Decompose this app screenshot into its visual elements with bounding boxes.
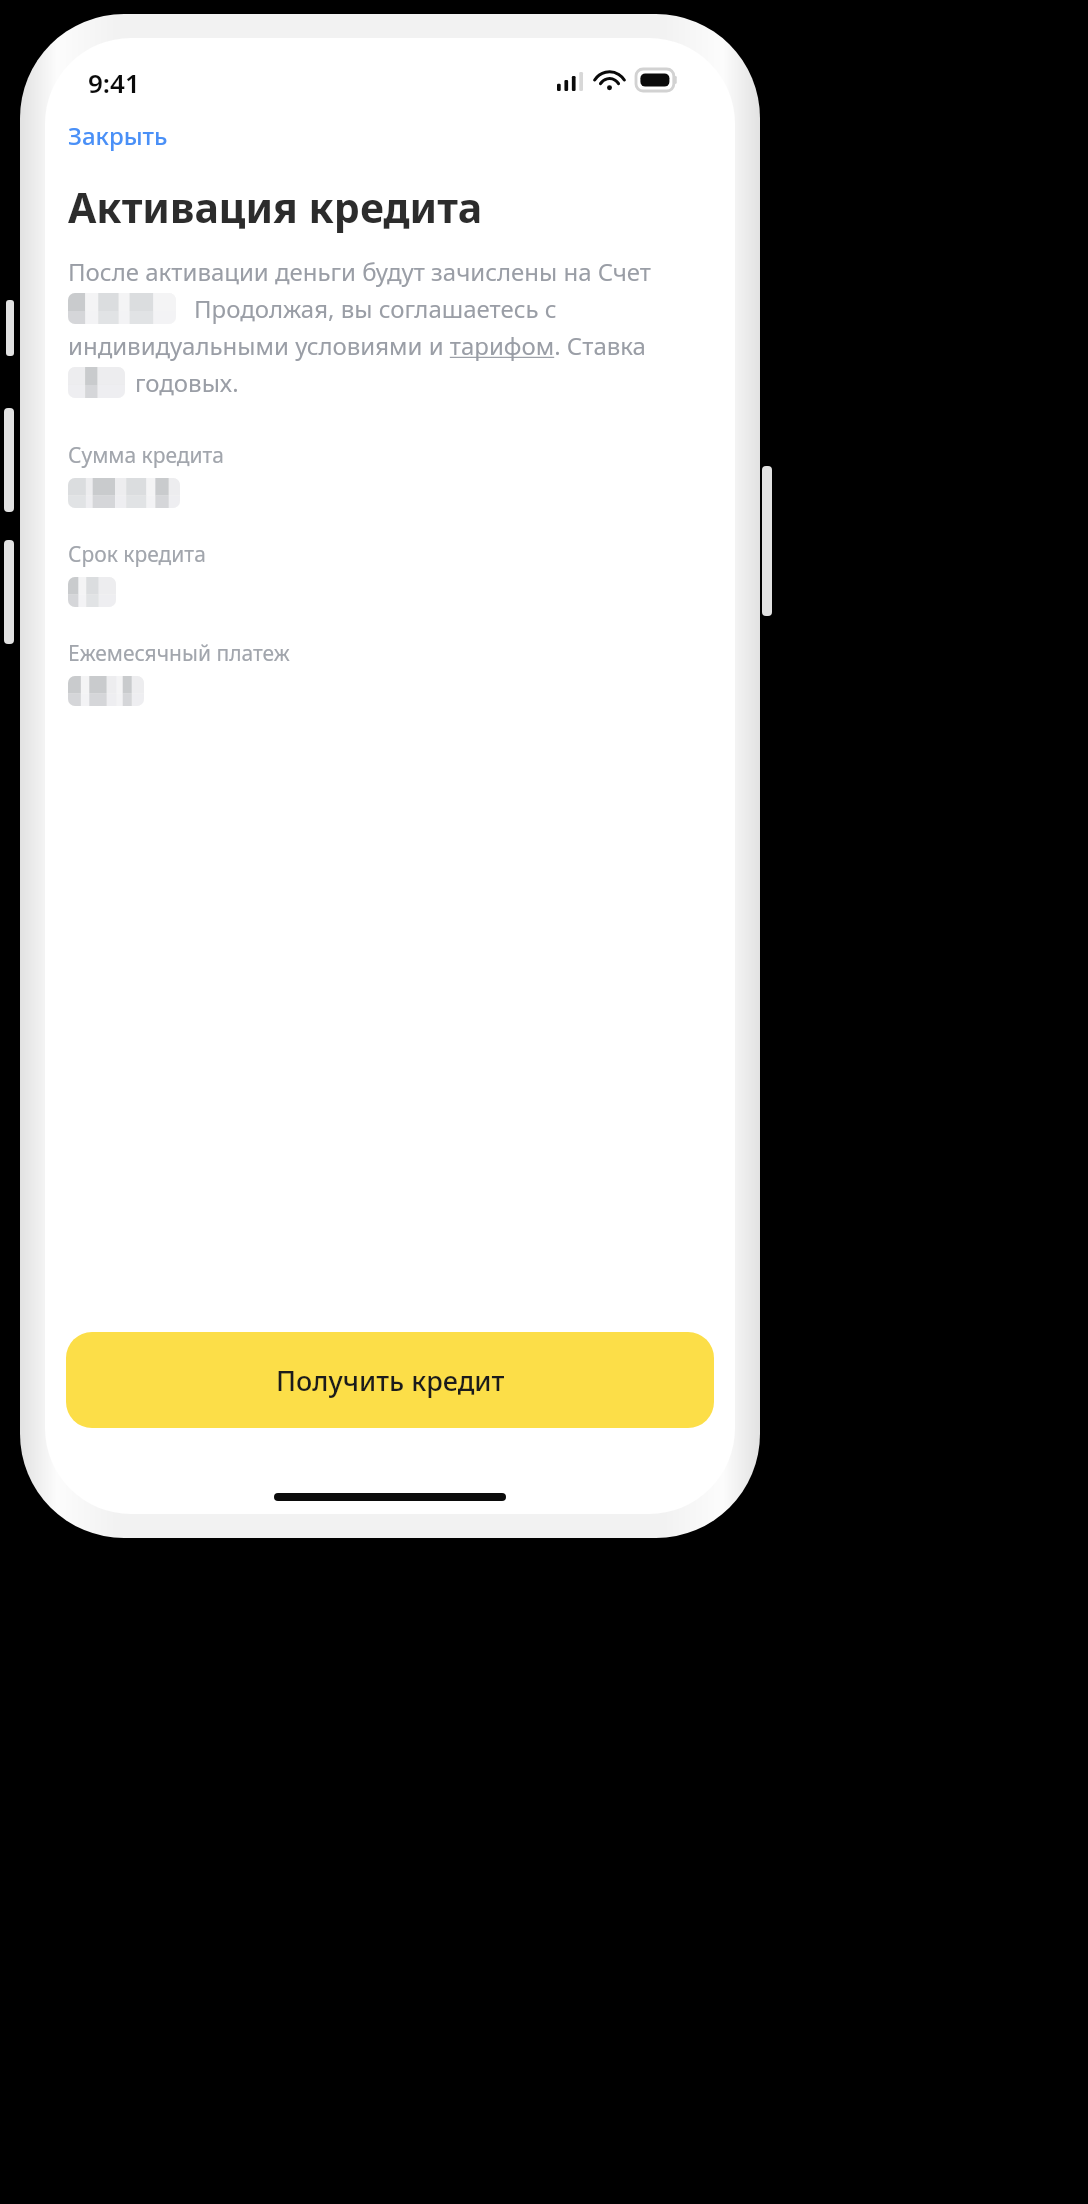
button[interactable]: Закрыть — [64, 114, 172, 157]
staticText: Срок кредита — [68, 540, 206, 569]
staticText: Ежемесячный платеж — [68, 639, 290, 668]
staticText: Продолжая, вы соглашаетесь с — [194, 292, 557, 325]
staticText: Сумма кредита — [68, 441, 225, 470]
staticText: индивидуальными условиями и тарифом. Ста… — [68, 329, 646, 362]
button[interactable]: Получить кредит — [66, 1332, 714, 1428]
staticText: Закрыть — [68, 119, 168, 152]
staticText: 9:41 — [88, 65, 140, 100]
staticText: Получить кредит — [276, 1362, 505, 1399]
staticText: После активации деньги будут зачислены н… — [68, 255, 651, 288]
staticText: годовых. — [135, 366, 239, 399]
staticText: Активация кредита — [68, 179, 483, 235]
